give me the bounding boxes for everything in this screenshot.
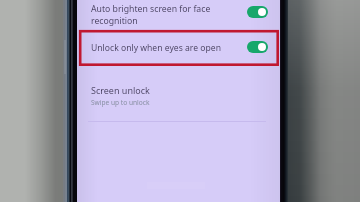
button[interactable]: Auto brighten screen for face recognitio… [91,0,253,30]
button[interactable]: Eyes open toggle [247,41,268,53]
staticText: Unlock only when eyes are open [91,42,221,54]
button[interactable]: Unlock only when eyes are open [91,34,253,62]
staticText: Swipe up to unlock [91,98,150,107]
button[interactable]: Screen unlock [91,84,266,107]
button[interactable]: Auto brighten toggle [247,6,268,18]
staticText: Screen unlock [91,84,150,96]
staticText: Auto brighten screen for face recognitio… [91,3,211,26]
